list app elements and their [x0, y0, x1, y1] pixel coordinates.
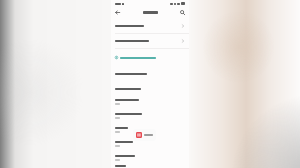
button[interactable]: Search [178, 8, 187, 17]
button[interactable] [111, 19, 189, 33]
button[interactable] [111, 137, 189, 151]
button[interactable] [111, 95, 189, 109]
button[interactable] [133, 129, 156, 141]
button[interactable] [111, 34, 189, 48]
button[interactable] [111, 53, 189, 62]
button[interactable] [111, 123, 189, 137]
button[interactable] [111, 165, 189, 168]
button[interactable] [111, 151, 189, 165]
button[interactable]: Back [113, 8, 122, 17]
button[interactable] [111, 109, 189, 123]
